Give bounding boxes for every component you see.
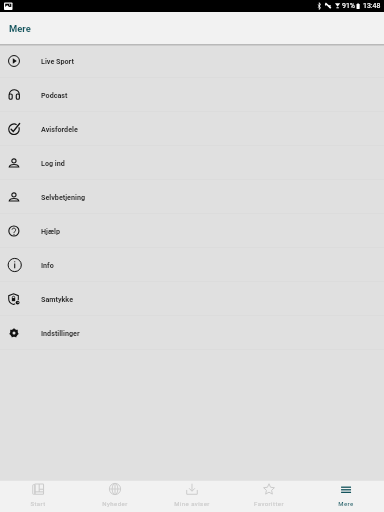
button[interactable]: Nyheder: [76, 481, 153, 512]
staticText: Nyheder: [102, 500, 128, 507]
button[interactable]: Podcast: [0, 78, 384, 112]
staticText: Avisfordele: [41, 125, 78, 133]
button[interactable]: Indstillinger: [0, 316, 384, 350]
button[interactable]: Mine aviser: [153, 481, 230, 512]
staticText: Start: [30, 500, 46, 507]
button[interactable]: Avisfordele: [0, 112, 384, 146]
staticText: Hjælp: [41, 227, 60, 235]
button[interactable]: Live Sport: [0, 44, 384, 78]
staticText: Live Sport: [41, 57, 74, 65]
button[interactable]: Hjælp: [0, 214, 384, 248]
button[interactable]: Selvbetjening: [0, 180, 384, 214]
button[interactable]: Favoritter: [230, 481, 307, 512]
staticText: Samtykke: [41, 295, 74, 303]
staticText: Log ind: [41, 159, 65, 167]
staticText: 13:48: [363, 2, 381, 10]
staticText: Mere: [9, 23, 31, 34]
staticText: Mere: [338, 500, 354, 507]
button[interactable]: Start: [0, 481, 76, 512]
button[interactable]: Mere: [307, 481, 384, 512]
staticText: Podcast: [41, 91, 68, 99]
button[interactable]: Log ind: [0, 146, 384, 180]
button[interactable]: Samtykke: [0, 282, 384, 316]
staticText: Indstillinger: [41, 329, 80, 337]
staticText: Selvbetjening: [41, 193, 86, 201]
staticText: Mine aviser: [174, 500, 210, 507]
staticText: 91%: [342, 2, 355, 10]
staticText: Info: [41, 261, 54, 269]
staticText: Favoritter: [254, 500, 284, 507]
button[interactable]: Info: [0, 248, 384, 282]
